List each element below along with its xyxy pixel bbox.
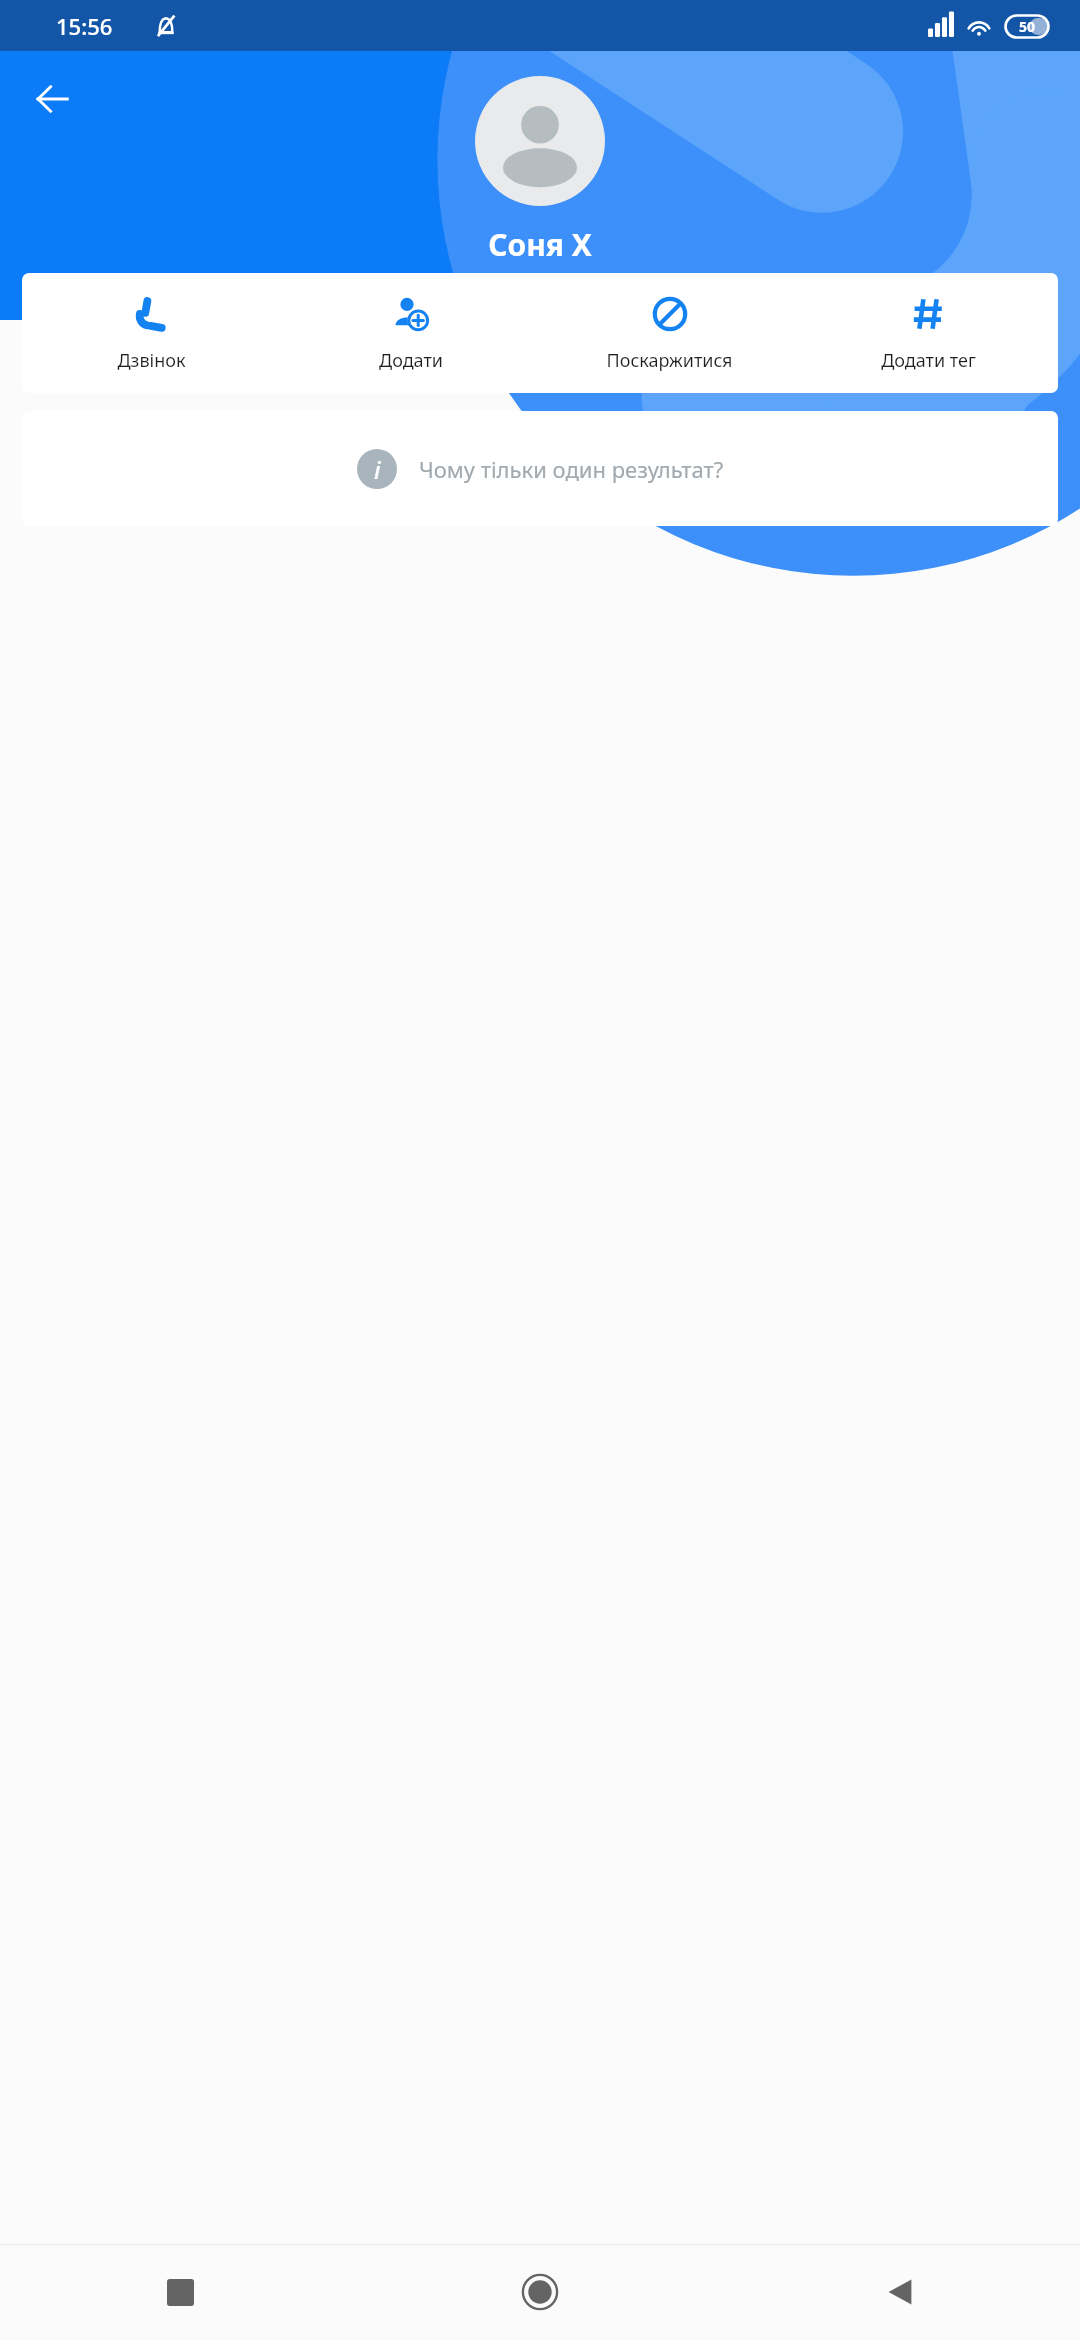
staticText: Чому тільки один результат? (419, 454, 724, 484)
staticText: Додати (379, 348, 443, 373)
staticText: Соня X (488, 224, 592, 265)
button[interactable]: Back (720, 2244, 1080, 2340)
staticText: 15:56 (56, 11, 113, 41)
button[interactable]: Поскаржитися (540, 273, 799, 393)
button[interactable]: Додати (281, 273, 540, 393)
button[interactable]: Додати тег (799, 273, 1058, 393)
staticText: Дзвінок (117, 348, 186, 373)
button[interactable]: Дзвінок (22, 273, 281, 393)
button[interactable]: Home (360, 2244, 720, 2340)
button[interactable]: Back (22, 68, 84, 130)
staticText: Додати тег (881, 348, 976, 373)
staticText: Поскаржитися (606, 348, 733, 373)
button[interactable]: Recents (0, 2244, 360, 2340)
staticText: 50 (1019, 17, 1036, 36)
staticText: i (374, 453, 381, 486)
button[interactable]: i (22, 411, 1058, 526)
